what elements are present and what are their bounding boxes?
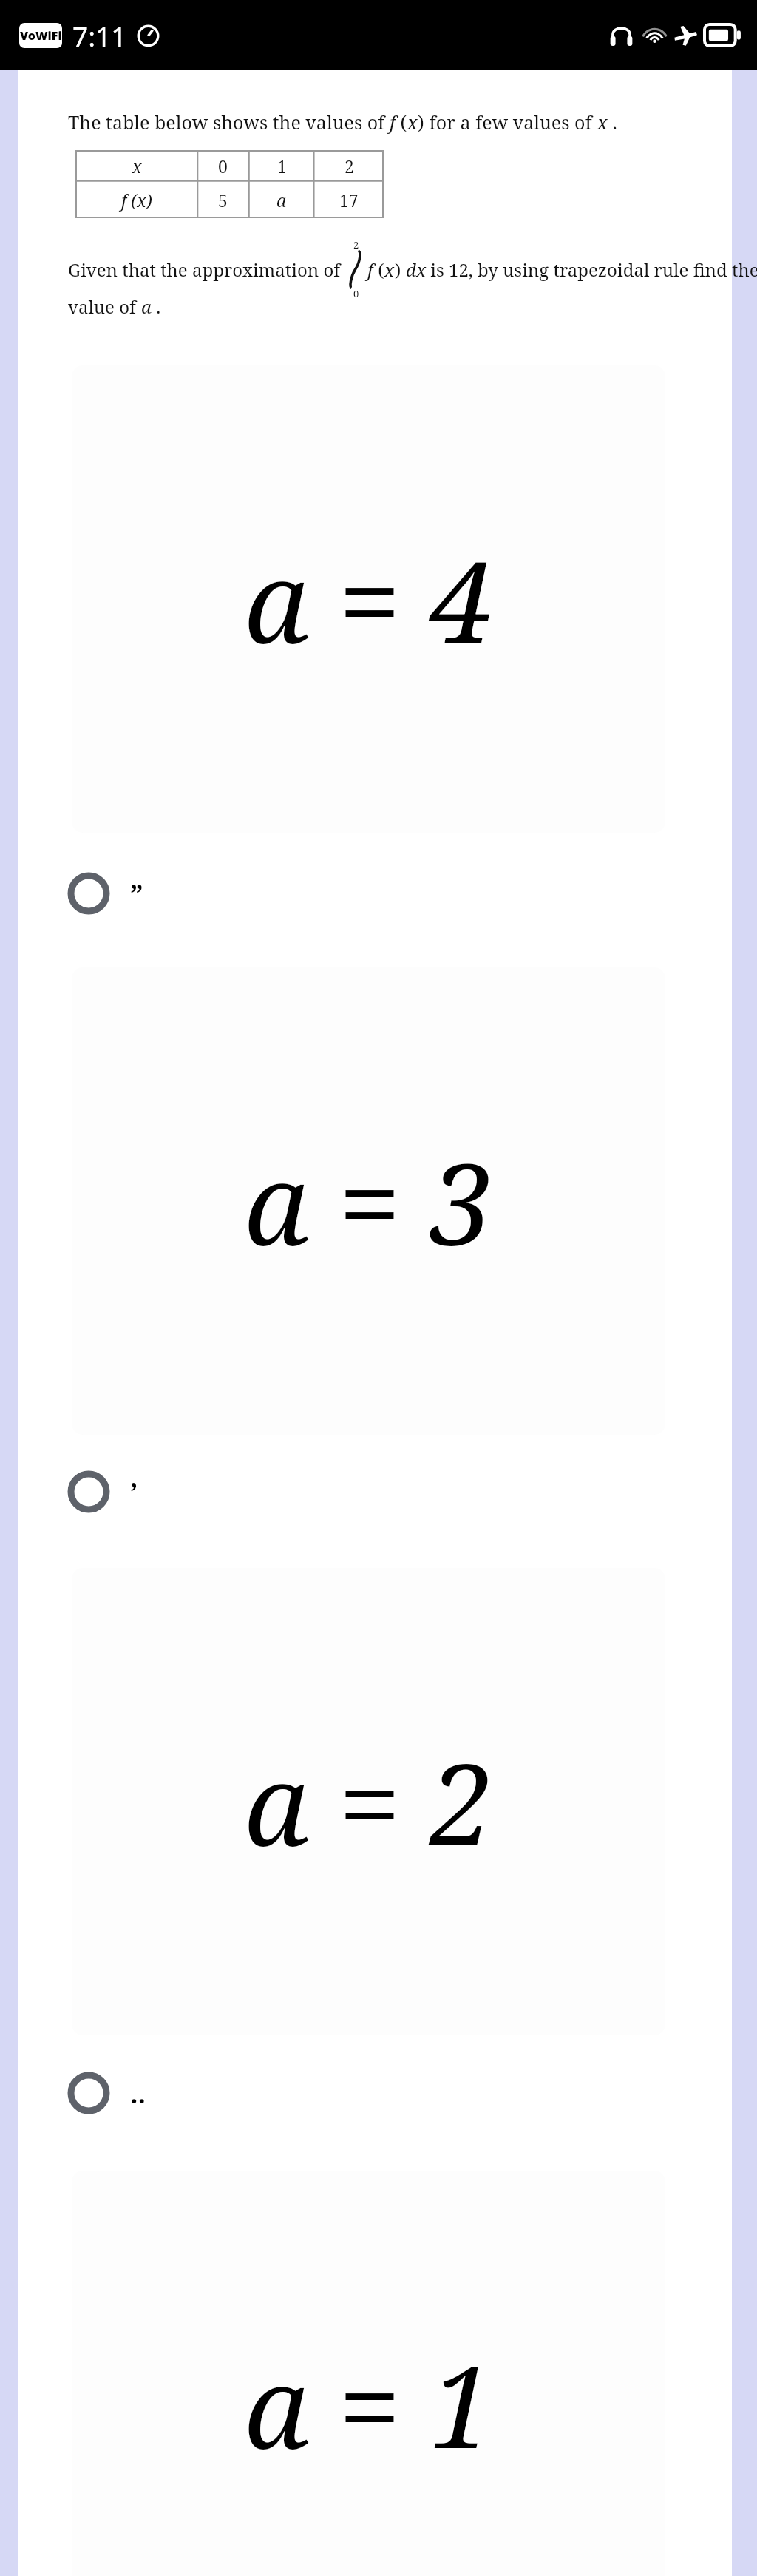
button[interactable]: Option a = 3 [67,1458,377,1525]
button[interactable]: Option a = 4 [67,860,377,927]
staticText: f [390,109,396,135]
staticText: 2 [344,155,354,178]
other: Option a = 2 [67,2071,111,2115]
staticText: a = 4 [244,523,493,676]
staticText: x [407,109,418,135]
staticText: ( [373,257,384,282]
staticText: 17 [339,189,359,212]
button[interactable]: a = 3 [72,967,665,1435]
staticText: is 12, by using trapezoidal rule find th… [426,257,757,282]
staticText: 0 [218,155,228,178]
staticText: 0 [353,287,359,300]
other: Option a = 3 [67,1470,111,1514]
staticText: ” [130,876,143,912]
button[interactable]: a = 4 [72,365,665,833]
staticText: .. [130,2075,146,2112]
staticText: ’ [130,1474,138,1510]
staticText: a = 3 [244,1125,493,1278]
staticText: 1 [277,155,287,178]
staticText: The table below shows the values of [68,109,390,135]
staticText: ) [395,257,406,282]
staticText: a = 1 [244,2328,493,2481]
staticText: a [276,189,287,212]
staticText: a = 2 [244,1725,493,1879]
staticText: ) [418,109,424,135]
staticText: 7:11 [72,17,127,54]
staticText: x [597,109,608,135]
button[interactable]: a = 1 [72,2171,665,2576]
staticText: value of [68,294,141,319]
staticText: Given that the approximation of [68,257,345,282]
staticText: 2 [353,238,359,251]
staticText: ( [396,109,407,135]
staticText: a [141,294,152,319]
staticText: for a few values of [424,109,597,135]
button[interactable]: a = 2 [72,1568,665,2035]
button[interactable]: Option a = 2 [67,2060,377,2126]
staticText: f (x) [121,189,152,212]
staticText: . [152,294,161,319]
staticText: . [608,109,617,135]
staticText: x [132,155,142,178]
staticText: VoWiFi [20,27,62,44]
staticText: 5 [218,189,228,212]
other: Option a = 4 [67,871,111,916]
staticText: x [384,257,395,282]
staticText: dx [406,257,426,282]
staticText: f [367,257,373,282]
